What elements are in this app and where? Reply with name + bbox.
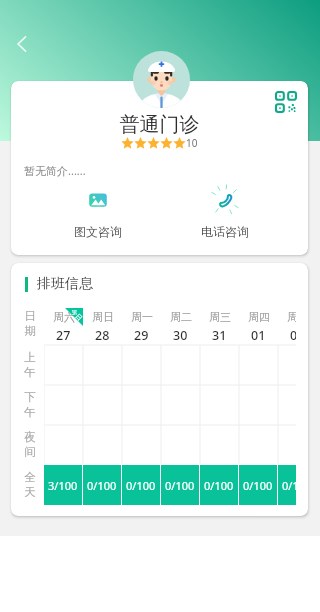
- staticText: 日 期: [24, 309, 36, 339]
- staticText: 普通门诊: [11, 112, 308, 137]
- staticText: 31: [212, 327, 227, 344]
- button[interactable]: 0/100: [278, 465, 296, 505]
- staticText: 周二: [170, 310, 192, 324]
- staticText: 排班信息: [37, 275, 93, 293]
- staticText: 下 午: [24, 390, 36, 420]
- button[interactable]: 0/100: [83, 465, 121, 505]
- staticText: 02: [290, 327, 296, 344]
- button[interactable]: 0/100: [161, 465, 199, 505]
- staticText: 0/100: [204, 478, 234, 493]
- staticText: 3/100: [48, 478, 78, 493]
- staticText: 0/100: [87, 478, 117, 493]
- staticText: 周日: [92, 310, 114, 324]
- button[interactable]: 0/100: [239, 465, 277, 505]
- staticText: 图文咨询: [74, 224, 122, 239]
- staticText: 0/100: [126, 478, 156, 493]
- staticText: 周五: [287, 310, 296, 324]
- staticText: 27: [56, 327, 71, 344]
- staticText: 上 午: [24, 350, 36, 380]
- staticText: 30: [173, 327, 188, 344]
- staticText: 10: [186, 136, 198, 150]
- staticText: 0/100: [165, 478, 195, 493]
- staticText: 电话咨询: [201, 224, 249, 239]
- staticText: 28: [95, 327, 110, 344]
- staticText: 29: [134, 327, 149, 344]
- button[interactable]: 3/100: [44, 465, 82, 505]
- staticText: 0/100: [243, 478, 273, 493]
- button[interactable]: 0/100: [122, 465, 160, 505]
- button[interactable]: Back: [9, 31, 35, 57]
- button[interactable]: QR code: [273, 89, 299, 115]
- staticText: 夜 间: [24, 430, 36, 460]
- staticText: 01: [251, 327, 266, 344]
- staticText: 周一: [131, 310, 153, 324]
- button[interactable]: 电话咨询: [195, 190, 255, 239]
- staticText: 全 天: [24, 470, 36, 500]
- staticText: 0/100: [282, 478, 296, 493]
- staticText: 周六: [53, 310, 75, 324]
- staticText: 周三: [209, 310, 231, 324]
- button[interactable]: 0/100: [200, 465, 238, 505]
- staticText: 暂无简介......: [24, 163, 86, 178]
- staticText: 今日: [69, 308, 84, 322]
- staticText: 周四: [248, 310, 270, 324]
- button[interactable]: 图文咨询: [68, 190, 128, 239]
